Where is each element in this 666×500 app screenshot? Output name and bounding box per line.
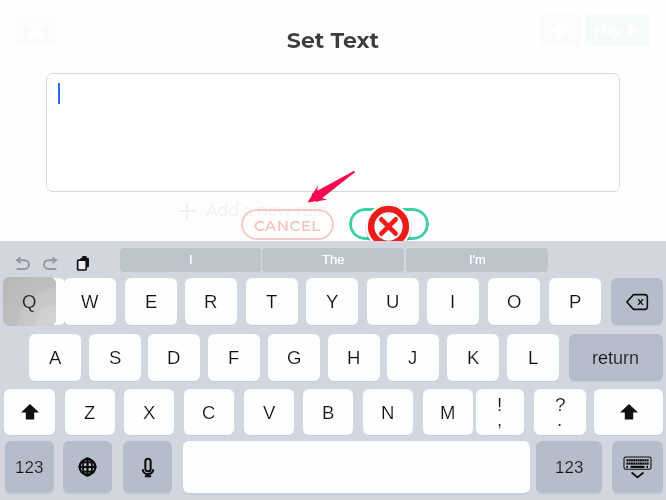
button[interactable]: J [387, 334, 439, 381]
button[interactable]: Undo [10, 250, 36, 276]
staticText: I [189, 252, 193, 267]
button[interactable]: Z [65, 389, 115, 435]
button[interactable]: Y [306, 278, 358, 325]
staticText: P [569, 291, 582, 312]
staticText: Y [326, 291, 339, 312]
staticText: V [263, 402, 276, 423]
button[interactable]: The [262, 248, 404, 272]
staticText: Set Text [0, 27, 666, 54]
button[interactable]: V [244, 389, 294, 435]
button[interactable]: A [29, 334, 81, 381]
staticText: . [557, 409, 563, 430]
button[interactable]: Paste [70, 250, 96, 276]
staticText: J [408, 347, 418, 368]
button[interactable] [4, 389, 55, 435]
button[interactable] [63, 441, 112, 493]
button[interactable]: I'm [406, 248, 548, 272]
button[interactable]: M [423, 389, 473, 435]
staticText: F [228, 347, 240, 368]
button[interactable]: G [268, 334, 320, 381]
button[interactable]: P [549, 278, 601, 325]
staticText: H [347, 347, 361, 368]
staticText: W [81, 291, 99, 312]
staticText: Add a new rule [206, 201, 327, 221]
staticText: 123 [15, 458, 44, 477]
button[interactable]: 123 [536, 441, 602, 493]
button[interactable]: B [303, 389, 353, 435]
staticText: E [145, 291, 158, 312]
staticText: M [440, 402, 456, 423]
staticText: N [381, 402, 395, 423]
staticText: B [322, 402, 335, 423]
staticText: Z [84, 402, 96, 423]
button[interactable]: K [447, 334, 499, 381]
button[interactable] [612, 441, 663, 493]
staticText: T [266, 291, 278, 312]
button[interactable] [46, 73, 620, 192]
staticText: R [204, 291, 218, 312]
button[interactable]: Redo [37, 250, 63, 276]
staticText: G [287, 347, 302, 368]
button[interactable]: O [488, 278, 540, 325]
staticText: D [167, 347, 181, 368]
button[interactable]: N [363, 389, 413, 435]
button[interactable]: L [507, 334, 559, 381]
button[interactable]: H [328, 334, 380, 381]
button[interactable]: ? [534, 389, 586, 435]
button[interactable]: I [427, 278, 479, 325]
staticText: , [497, 409, 503, 430]
staticText: The [322, 252, 345, 267]
button[interactable] [611, 278, 663, 325]
staticText: ! [497, 394, 503, 415]
button[interactable]: CANCEL [241, 209, 334, 240]
button[interactable]: return [569, 334, 663, 381]
staticText: CANCEL [254, 216, 321, 234]
button[interactable] [13, 278, 65, 325]
button[interactable]: Q [3, 277, 56, 326]
button[interactable]: Add a new rule [178, 201, 328, 221]
button[interactable] [123, 441, 172, 493]
button[interactable]: E [125, 278, 177, 325]
staticText: A [49, 347, 62, 368]
staticText: I [450, 291, 456, 312]
staticText: K [467, 347, 480, 368]
staticText: I'm [469, 252, 486, 267]
button[interactable]: D [148, 334, 200, 381]
staticText: return [592, 348, 640, 368]
button[interactable]: X [124, 389, 174, 435]
staticText: L [528, 347, 539, 368]
button[interactable]: S [89, 334, 141, 381]
button[interactable]: Confirm [349, 208, 429, 240]
staticText: C [202, 402, 216, 423]
button[interactable]: F [208, 334, 260, 381]
button[interactable]: ! [476, 389, 524, 435]
staticText: ? [555, 394, 566, 415]
button[interactable] [594, 389, 663, 435]
staticText: O [507, 291, 522, 312]
button[interactable]: Delete [362, 200, 415, 253]
button[interactable]: W [64, 278, 116, 325]
staticText: U [386, 291, 400, 312]
button[interactable]: C [184, 389, 234, 435]
button[interactable]: R [185, 278, 237, 325]
button[interactable]: T [246, 278, 298, 325]
staticText: Play [594, 21, 622, 39]
button[interactable]: U [367, 278, 419, 325]
button[interactable]: I [120, 248, 261, 272]
staticText: 123 [555, 458, 584, 477]
button[interactable]: 123 [5, 441, 54, 493]
staticText: X [143, 402, 156, 423]
staticText: Q [22, 291, 37, 312]
staticText: S [109, 347, 122, 368]
